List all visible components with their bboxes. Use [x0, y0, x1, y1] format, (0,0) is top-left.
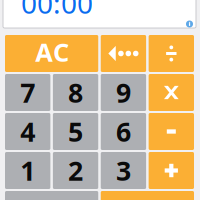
button[interactable]: Multiply	[149, 74, 194, 111]
staticText: AC	[35, 35, 69, 69]
button[interactable]: 8	[53, 74, 98, 111]
staticText: 7	[20, 75, 35, 110]
staticText: 8	[68, 75, 83, 110]
button[interactable]: 4	[5, 113, 50, 150]
button[interactable]: 2	[53, 152, 98, 189]
button[interactable]: Equals	[101, 191, 194, 200]
button[interactable]: Minus	[149, 113, 194, 150]
staticText: 9	[116, 75, 131, 110]
button[interactable]: Info	[182, 17, 196, 31]
button[interactable]: 3	[101, 152, 146, 189]
button[interactable]: Plus	[149, 152, 194, 189]
button[interactable]: 1	[5, 152, 50, 189]
button[interactable]: Delete	[101, 35, 146, 72]
button[interactable]: 5	[53, 113, 98, 150]
button[interactable]: 7	[5, 74, 50, 111]
button[interactable]: Divide	[149, 35, 194, 72]
button[interactable]: 6	[101, 113, 146, 150]
staticText: 4	[20, 114, 35, 149]
staticText: 6	[116, 114, 131, 149]
staticText: 2	[68, 153, 83, 188]
staticText: 5	[68, 114, 83, 149]
button[interactable]: 9	[101, 74, 146, 111]
staticText: 1	[20, 153, 35, 188]
staticText: 3	[116, 153, 131, 188]
button[interactable]: All clear	[5, 35, 98, 72]
staticText: 00:00	[21, 0, 93, 22]
